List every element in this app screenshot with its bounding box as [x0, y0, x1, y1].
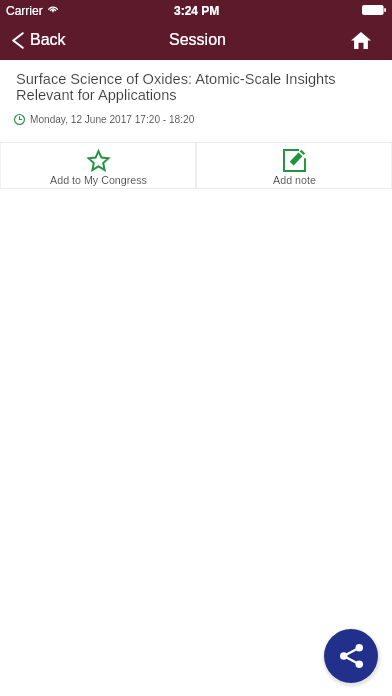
staticText: Surface Science of Oxides: Atomic-Scale …	[16, 71, 376, 103]
button[interactable]: Back	[0, 25, 78, 55]
staticText: Carrier	[6, 4, 43, 17]
button[interactable]: Share	[324, 629, 378, 683]
button[interactable]: Home	[339, 22, 392, 59]
staticText: Back	[30, 31, 66, 49]
button[interactable]: Add to My Congress	[1, 143, 195, 188]
staticText: Monday, 12 June 2017 17:20 - 18:20	[30, 114, 195, 125]
staticText: Add to My Congress	[50, 174, 147, 186]
staticText: 3:24 PM	[174, 4, 220, 17]
button[interactable]: Add note	[197, 143, 391, 188]
staticText: Session	[169, 31, 226, 49]
staticText: Add note	[273, 174, 316, 186]
